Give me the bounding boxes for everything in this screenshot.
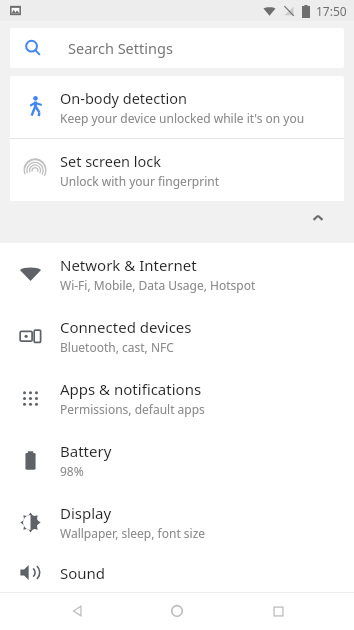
button[interactable]: On-body detection: [10, 76, 344, 138]
button[interactable]: Search Settings: [10, 28, 344, 68]
button[interactable]: Collapse suggestions: [10, 201, 344, 235]
button[interactable]: Set screen lock: [10, 139, 344, 201]
staticText: 98%: [60, 463, 84, 479]
staticText: Apps & notifications: [60, 379, 202, 399]
staticText: Connected devices: [60, 317, 192, 337]
button[interactable]: Sound: [0, 553, 354, 592]
staticText: Battery: [60, 441, 112, 461]
staticText: Wi-Fi, Mobile, Data Usage, Hotspot: [60, 277, 256, 293]
staticText: Set screen lock: [60, 151, 162, 171]
staticText: 17:50: [316, 3, 347, 19]
button[interactable]: Battery: [0, 429, 354, 491]
staticText: Search Settings: [68, 38, 173, 58]
staticText: Sound: [60, 563, 106, 583]
staticText: Unlock with your fingerprint: [60, 173, 220, 189]
button[interactable]: Home: [153, 592, 201, 630]
button[interactable]: Apps & notifications: [0, 367, 354, 429]
staticText: Bluetooth, cast, NFC: [60, 339, 174, 355]
staticText: Wallpaper, sleep, font size: [60, 525, 206, 541]
button[interactable]: Recents: [254, 592, 302, 630]
button[interactable]: Back: [53, 592, 101, 630]
staticText: Permissions, default apps: [60, 401, 205, 417]
staticText: On-body detection: [60, 88, 187, 108]
staticText: Keep your device unlocked while it's on …: [60, 110, 305, 126]
staticText: Display: [60, 503, 112, 523]
staticText: Network & Internet: [60, 255, 197, 275]
button[interactable]: Connected devices: [0, 305, 354, 367]
button[interactable]: Network & Internet: [0, 243, 354, 305]
button[interactable]: Display: [0, 491, 354, 553]
